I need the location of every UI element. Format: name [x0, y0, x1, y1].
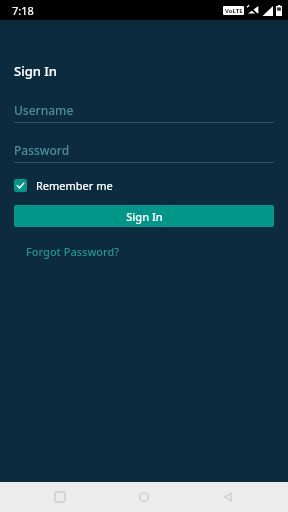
- staticText: Sign In: [14, 62, 58, 80]
- button[interactable]: Password: [14, 142, 274, 163]
- button[interactable]: Back: [204, 482, 252, 512]
- button[interactable]: Remember me: [14, 175, 113, 196]
- button[interactable]: Username: [14, 102, 274, 123]
- staticText: Sign In: [126, 209, 163, 224]
- staticText: VoLTE: [225, 7, 243, 15]
- staticText: 7:18: [12, 3, 34, 18]
- button[interactable]: Sign In: [14, 205, 274, 227]
- button[interactable]: Forgot Password?: [14, 242, 120, 261]
- button[interactable]: Recent apps: [36, 482, 84, 512]
- staticText: Password: [14, 142, 70, 158]
- button[interactable]: Home: [120, 482, 168, 512]
- staticText: Remember me: [36, 178, 113, 193]
- staticText: Username: [14, 102, 74, 118]
